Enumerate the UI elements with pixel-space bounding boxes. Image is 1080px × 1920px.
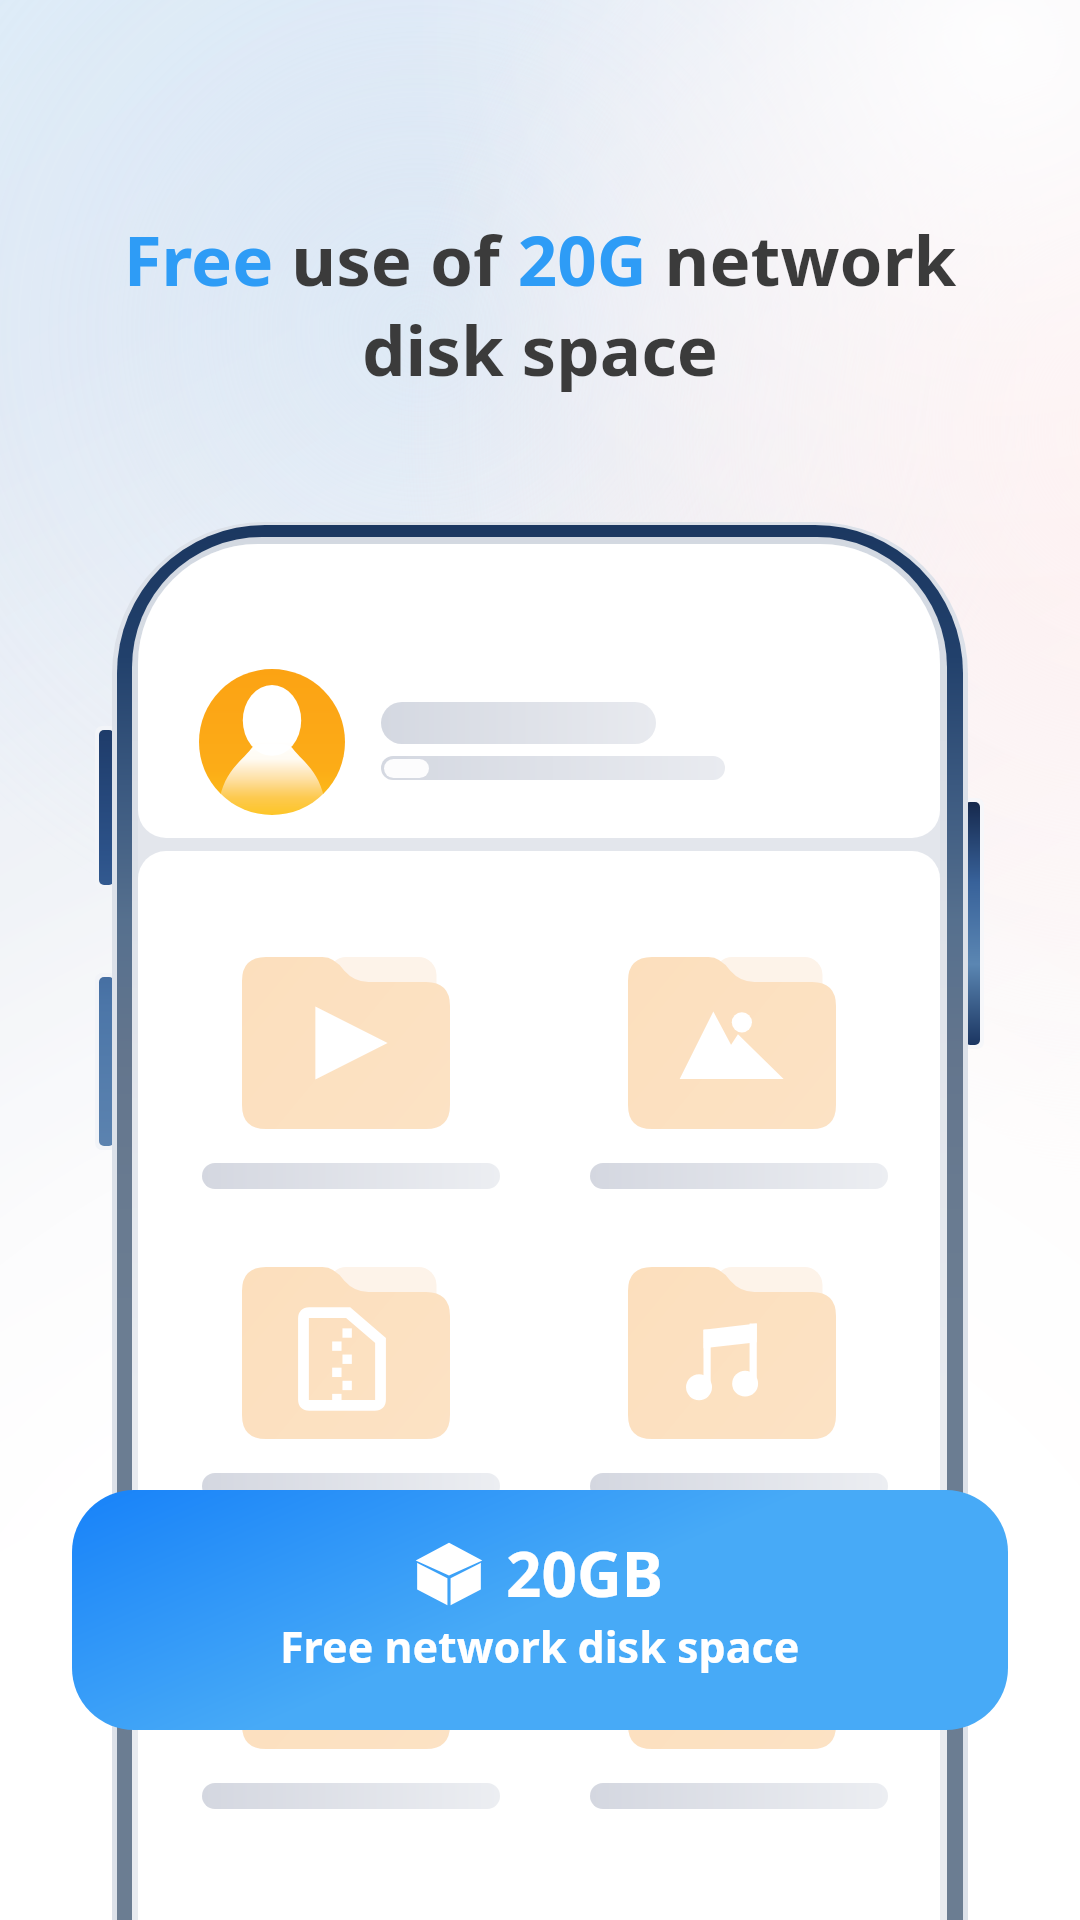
- button[interactable]: 20GB: [72, 1490, 1008, 1730]
- staticText: 20GB: [506, 1531, 664, 1615]
- staticText: Free use of 20G network disk space: [80, 212, 1000, 396]
- staticText: Free network disk space: [280, 1617, 800, 1676]
